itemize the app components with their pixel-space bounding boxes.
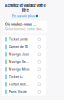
staticText: Ticket unité xyxy=(9,37,28,41)
button[interactable]: Ticket t+ xyxy=(2,73,46,81)
staticText: Où voulez-vous aller ? xyxy=(5,22,35,26)
staticText: Achetez et validez votre xyxy=(4,3,45,8)
staticText: Carnet de 10 xyxy=(9,45,28,49)
button[interactable]: Paris Visite xyxy=(2,88,46,96)
button[interactable]: Ticket unité xyxy=(2,36,46,43)
button[interactable]: Forfait Antipollution xyxy=(2,81,46,88)
button[interactable]: Navigo Jour xyxy=(2,51,46,58)
staticText: Navigo Semaine xyxy=(9,60,30,64)
button[interactable]: En savoir plus xyxy=(12,14,38,18)
staticText: titre xyxy=(21,8,28,13)
staticText: Sélectionnez votre destination xyxy=(5,27,45,31)
staticText: En savoir plus xyxy=(12,14,35,18)
button[interactable]: Navigo Semaine xyxy=(2,58,46,66)
staticText: Navigo Mois xyxy=(9,67,30,71)
button[interactable]: Carnet de 10 xyxy=(2,43,46,51)
button[interactable]: Navigo Mois xyxy=(2,66,46,73)
staticText: Paris Visite xyxy=(9,90,27,94)
staticText: Forfait Antipollution xyxy=(9,82,30,86)
staticText: Ticket t+ xyxy=(9,75,23,79)
staticText: Navigo Jour xyxy=(9,52,29,56)
